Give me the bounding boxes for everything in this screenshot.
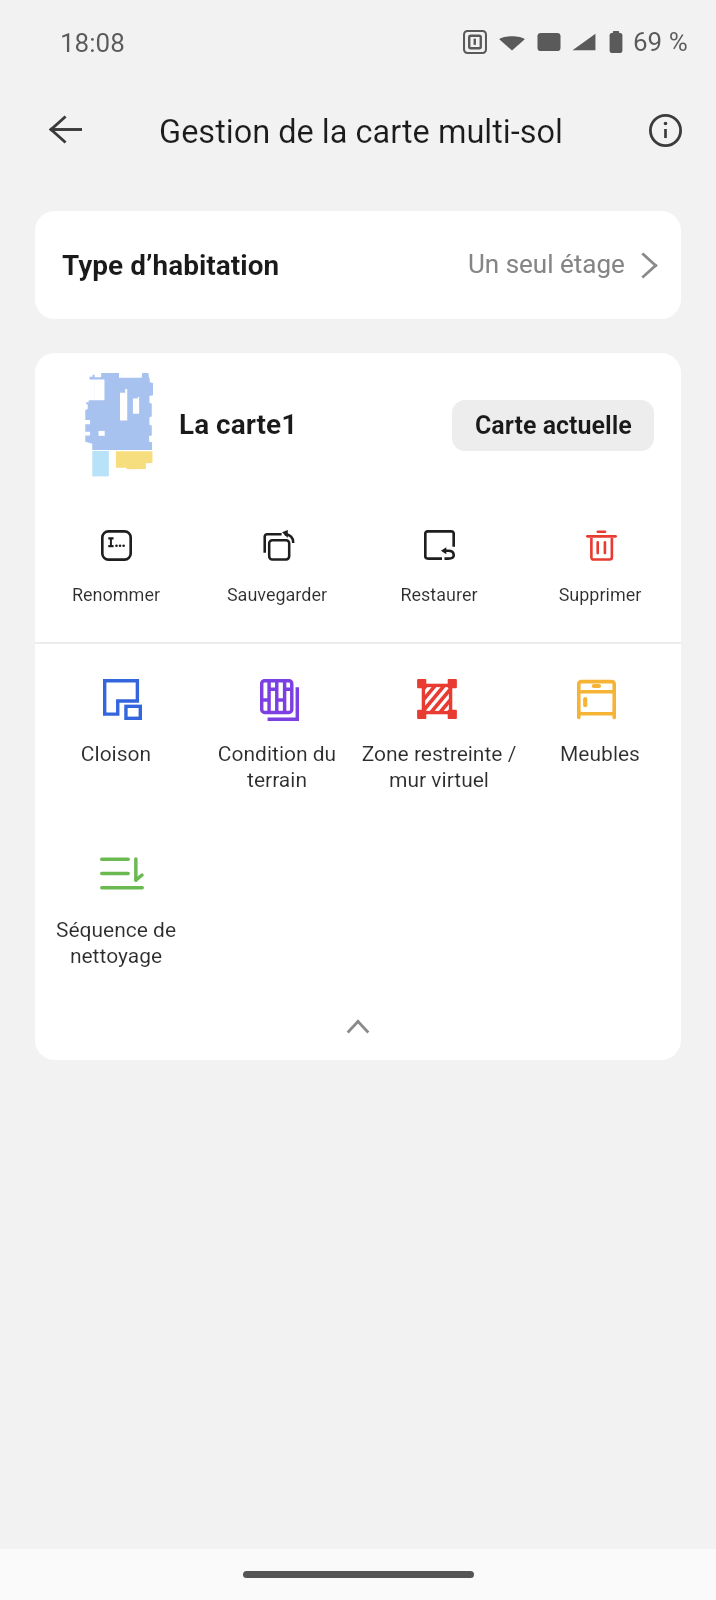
button[interactable] [35, 851, 197, 961]
staticText: Gestion de la carte multi-sol [159, 113, 563, 151]
staticText: Renommer [35, 584, 226, 605]
button[interactable]: Type d’habitation [35, 211, 681, 319]
button[interactable] [35, 513, 197, 623]
staticText: Meubles [490, 742, 681, 767]
staticText: Supprimer [490, 584, 681, 605]
button[interactable] [197, 673, 359, 783]
button[interactable] [35, 673, 197, 783]
staticText: Un seul étage [468, 249, 625, 279]
staticText: Type d’habitation [62, 249, 280, 282]
staticText: Zone restreinte / mur virtuel [329, 742, 549, 792]
staticText: Restaurer [329, 584, 549, 605]
button[interactable]: Collapse [298, 996, 418, 1056]
button[interactable] [520, 513, 681, 623]
staticText: La carte1 [179, 408, 298, 441]
button[interactable]: Back [34, 97, 98, 161]
button[interactable] [520, 673, 681, 783]
button[interactable] [358, 513, 520, 623]
button[interactable] [197, 513, 359, 623]
staticText: Cloison [35, 742, 226, 767]
staticText: Carte actuelle [475, 411, 632, 440]
staticText: Condition du terrain [167, 742, 387, 792]
button[interactable]: Information [634, 99, 696, 161]
staticText: 69 % [633, 27, 688, 57]
staticText: 18:08 [60, 28, 125, 58]
staticText: Séquence de nettoyage [35, 918, 226, 968]
button[interactable] [358, 673, 520, 783]
button[interactable]: Carte actuelle [452, 400, 654, 451]
staticText: Sauvegarder [167, 584, 387, 605]
